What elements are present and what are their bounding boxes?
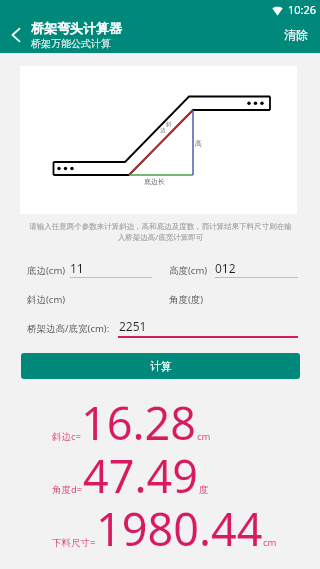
staticText: 10:26 bbox=[288, 2, 317, 17]
staticText: 斜 bbox=[166, 121, 172, 128]
staticText: 底边长 bbox=[144, 177, 165, 186]
staticText: 桥架弯头计算器 bbox=[31, 20, 122, 36]
button[interactable]: Back bbox=[2, 21, 30, 49]
staticText: 边 bbox=[160, 127, 166, 134]
staticText: 2251 bbox=[119, 318, 147, 334]
staticText: 16.28 bbox=[81, 392, 197, 453]
staticText: 1980.44 bbox=[96, 498, 263, 559]
staticText: 高 bbox=[195, 139, 202, 148]
staticText: 角度d= bbox=[52, 483, 83, 496]
staticText: 11 bbox=[70, 260, 84, 276]
staticText: 请输入任意两个参数来计算斜边，高和底边及度数，而计算结果下料尺寸则在输入桥架边高… bbox=[28, 222, 293, 242]
button[interactable]: 计算 bbox=[21, 353, 300, 379]
staticText: 下料尺寸= bbox=[52, 536, 96, 549]
staticText: 桥架边高/底宽(cm): bbox=[27, 322, 110, 335]
staticText: 桥架万能公式计算 bbox=[31, 37, 111, 50]
staticText: cm bbox=[263, 536, 277, 549]
staticText: 计算 bbox=[150, 359, 172, 373]
staticText: cm bbox=[197, 430, 211, 443]
staticText: 斜边c= bbox=[52, 430, 81, 443]
staticText: 高度(cm) bbox=[169, 264, 208, 277]
button[interactable]: 清除 bbox=[284, 27, 308, 42]
staticText: 角度(度) bbox=[169, 293, 204, 306]
staticText: 清除 bbox=[284, 27, 308, 42]
staticText: 斜边(cm) bbox=[27, 293, 66, 306]
staticText: 47.49 bbox=[83, 445, 199, 506]
staticText: 度 bbox=[199, 484, 209, 496]
staticText: 底边(cm) bbox=[27, 264, 66, 277]
staticText: 012 bbox=[215, 260, 236, 276]
